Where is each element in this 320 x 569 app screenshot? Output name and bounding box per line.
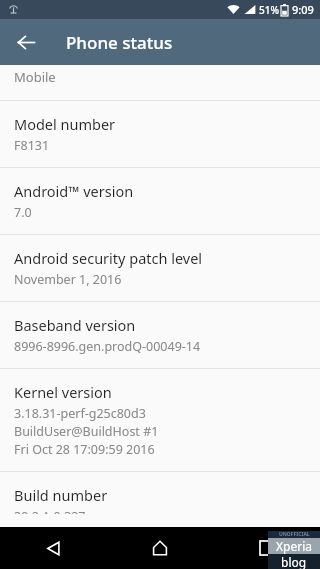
staticText: Xperia xyxy=(276,538,312,554)
button[interactable]: Baseband version xyxy=(0,302,320,368)
button[interactable]: Android™ version xyxy=(0,168,320,234)
staticText: 8996-8996.gen.prodQ-00049-14 xyxy=(14,338,201,355)
button[interactable]: Model number xyxy=(0,101,320,167)
staticText: Fri Oct 28 17:09:59 2016 xyxy=(14,441,155,458)
staticText: blog xyxy=(281,554,307,569)
button[interactable]: Back xyxy=(0,527,106,569)
staticText: Android security patch level xyxy=(14,248,203,268)
staticText: Android™ version xyxy=(14,181,134,201)
staticText: Baseband version xyxy=(14,315,136,335)
button[interactable]: Recent apps xyxy=(213,527,320,569)
button[interactable]: Back xyxy=(6,22,46,62)
staticText: UNOFFICIAL xyxy=(279,531,310,538)
staticText: November 1, 2016 xyxy=(14,271,122,288)
staticText: 39.2.A.0.327 xyxy=(14,508,86,514)
staticText: F8131 xyxy=(14,137,50,154)
staticText: Build number xyxy=(14,485,108,505)
staticText: 7.0 xyxy=(14,204,32,221)
button[interactable]: Build number xyxy=(0,472,320,527)
staticText: BuildUser@BuildHost #1 xyxy=(14,423,159,440)
button[interactable]: Android security patch level xyxy=(0,235,320,301)
staticText: Kernel version xyxy=(14,382,112,402)
button[interactable]: Home xyxy=(106,527,213,569)
staticText: Model number xyxy=(14,114,116,134)
staticText: Phone status xyxy=(66,31,173,54)
staticText: 3.18.31-perf-g25c80d3 xyxy=(14,405,146,422)
staticText: Mobile xyxy=(14,68,56,86)
button[interactable]: Kernel version xyxy=(0,369,320,471)
staticText: 51% xyxy=(259,3,279,17)
staticText: 9:09 xyxy=(292,2,314,17)
button[interactable]: Mobile xyxy=(0,65,320,100)
